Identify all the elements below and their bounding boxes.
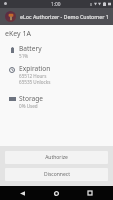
- button[interactable]: Back: [15, 186, 29, 200]
- staticText: 51%: [19, 53, 29, 59]
- button[interactable]: Expiration: [0, 64, 113, 85]
- button[interactable]: Home: [49, 186, 63, 200]
- button[interactable]: Battery: [0, 44, 113, 59]
- button[interactable]: Disconnect: [5, 168, 108, 181]
- staticText: Authorize: [45, 154, 68, 161]
- button[interactable]: Storage: [0, 94, 113, 109]
- staticText: Storage: [19, 94, 44, 103]
- staticText: Disconnect: [44, 171, 70, 178]
- button[interactable]: Recents: [83, 186, 97, 200]
- staticText: eLoc Authorizer - Demo Customer 1: [20, 13, 109, 20]
- button[interactable]: App icon: [5, 11, 16, 22]
- staticText: 65512 Hours: [19, 73, 47, 79]
- staticText: 65535 Unlocks: [19, 79, 51, 85]
- staticText: Battery: [19, 44, 42, 53]
- staticText: Expiration: [19, 64, 51, 73]
- button[interactable]: eKey 1A: [5, 29, 31, 39]
- staticText: 0% Used: [19, 103, 38, 109]
- button[interactable]: Authorize: [5, 151, 108, 164]
- staticText: 1:00: [51, 1, 61, 8]
